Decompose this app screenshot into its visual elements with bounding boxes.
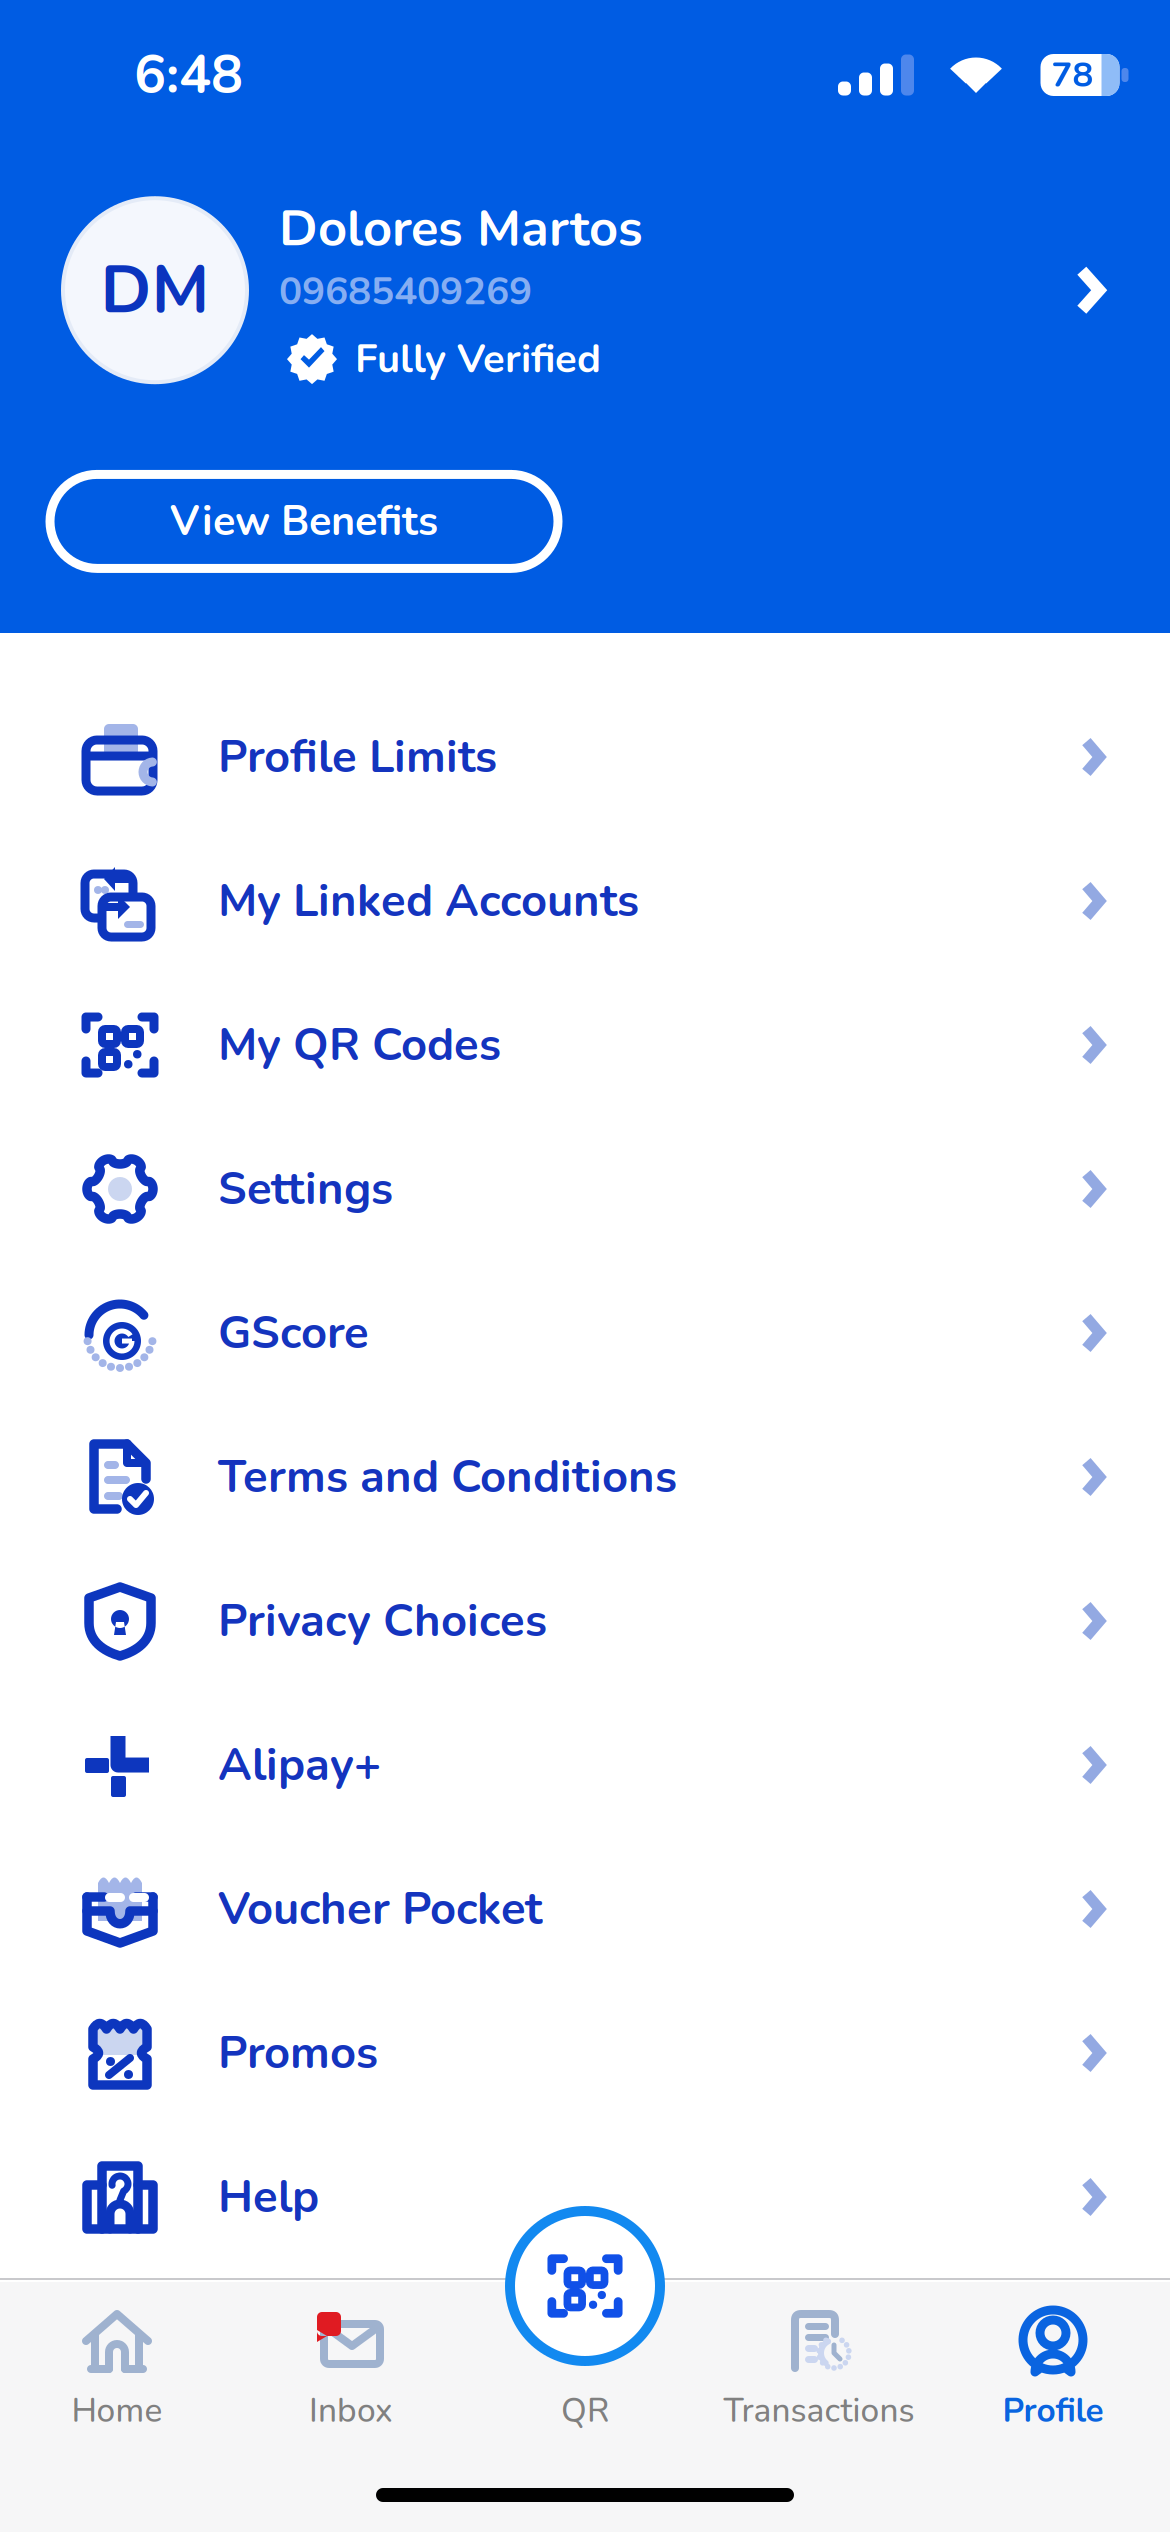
button[interactable]: Voucher Pocket (0, 1837, 1170, 1981)
button[interactable]: GScore (0, 1261, 1170, 1405)
button[interactable]: QR (468, 2280, 702, 2528)
staticText: My Linked Accounts (218, 870, 639, 932)
staticText: Profile (1002, 2388, 1103, 2433)
staticText: View Benefits (170, 493, 438, 550)
button[interactable]: My Linked Accounts (0, 829, 1170, 973)
staticText: Terms and Conditions (218, 1446, 677, 1508)
staticText: Fully Verified (355, 332, 601, 386)
button[interactable]: DM (0, 194, 1170, 386)
button[interactable]: Transactions (702, 2280, 936, 2528)
button[interactable]: Profile (936, 2280, 1170, 2528)
staticText: Home (71, 2388, 162, 2433)
staticText: Promos (218, 2022, 378, 2084)
button[interactable]: Privacy Choices (0, 1549, 1170, 1693)
staticText: My QR Codes (218, 1014, 501, 1076)
staticText: Voucher Pocket (218, 1878, 542, 1940)
button[interactable]: My QR Codes (0, 973, 1170, 1117)
staticText: Profile Limits (218, 726, 497, 788)
staticText: Inbox (309, 2388, 393, 2433)
staticText: Alipay+ (218, 1734, 381, 1796)
button[interactable]: Profile Limits (0, 685, 1170, 829)
button[interactable]: Help (0, 2125, 1170, 2269)
button[interactable]: Scan QR code (505, 2206, 665, 2366)
staticText: Settings (218, 1158, 393, 1220)
staticText: 78 (1051, 51, 1093, 99)
button[interactable]: Home (0, 2280, 234, 2528)
button[interactable]: Promos (0, 1981, 1170, 2125)
staticText: DM (100, 245, 209, 336)
button[interactable]: Terms and Conditions (0, 1405, 1170, 1549)
staticText: 6:48 (134, 39, 243, 111)
button[interactable]: View Benefits (50, 474, 558, 568)
staticText: Help (218, 2166, 319, 2228)
staticText: GScore (218, 1302, 369, 1364)
button[interactable]: Inbox (234, 2280, 468, 2528)
button[interactable]: Settings (0, 1117, 1170, 1261)
staticText: Transactions (723, 2388, 914, 2433)
staticText: Dolores Martos (279, 194, 643, 263)
button[interactable]: Alipay+ (0, 1693, 1170, 1837)
staticText: Privacy Choices (218, 1590, 547, 1652)
staticText: 09685409269 (279, 265, 532, 318)
staticText: QR (561, 2388, 609, 2433)
